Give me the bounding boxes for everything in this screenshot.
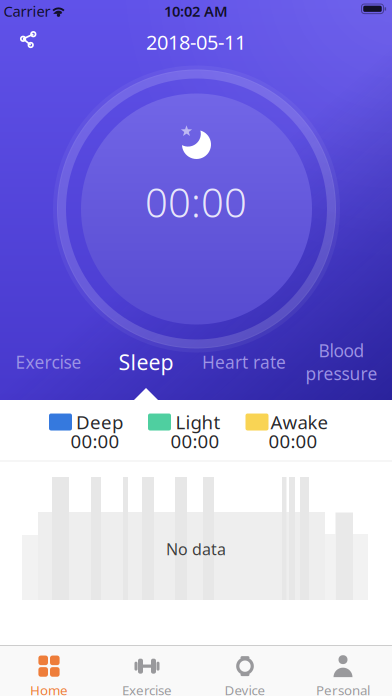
- staticText: 00:00: [170, 429, 219, 453]
- staticText: Heart rate: [202, 350, 286, 373]
- button[interactable]: Personal: [294, 652, 392, 696]
- button[interactable]: Sleep: [98, 336, 194, 388]
- staticText: Carrier: [3, 1, 50, 21]
- button[interactable]: Device: [196, 652, 294, 696]
- staticText: 00:00: [70, 429, 119, 453]
- button[interactable]: Blood: [293, 336, 389, 388]
- button[interactable]: [14, 25, 44, 55]
- staticText: Home: [30, 681, 68, 696]
- staticText: Personal: [316, 681, 370, 696]
- staticText: 2018-05-11: [146, 29, 246, 55]
- staticText: Light: [175, 410, 220, 434]
- staticText: Exercise: [15, 350, 81, 373]
- staticText: Blood: [318, 339, 364, 362]
- button[interactable]: Heart rate: [196, 336, 292, 388]
- button[interactable]: Home: [0, 652, 98, 696]
- staticText: Deep: [76, 410, 123, 434]
- staticText: pressure: [305, 362, 377, 385]
- staticText: Device: [224, 681, 265, 696]
- staticText: Awake: [270, 410, 328, 434]
- staticText: 10:02 AM: [164, 1, 228, 21]
- staticText: Sleep: [118, 348, 173, 376]
- staticText: 00:00: [268, 429, 317, 453]
- button[interactable]: Exercise: [98, 652, 196, 696]
- button[interactable]: Exercise: [0, 336, 96, 388]
- staticText: 00:00: [145, 175, 247, 228]
- staticText: No data: [166, 538, 226, 560]
- staticText: Exercise: [122, 681, 172, 696]
